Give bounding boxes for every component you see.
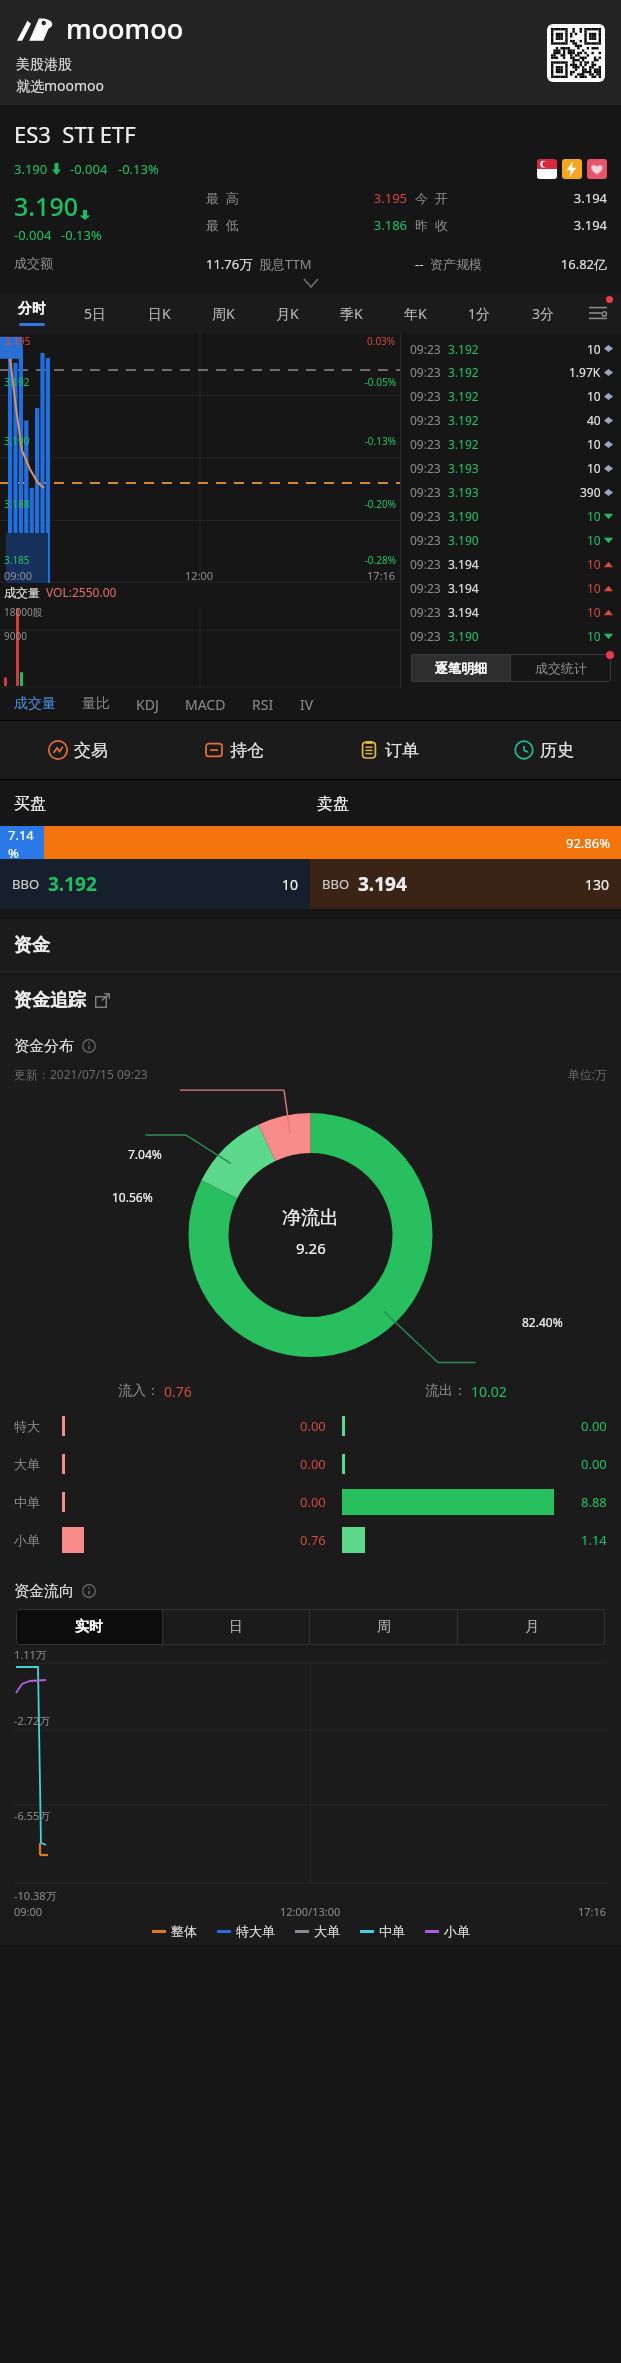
button[interactable]: 09:23 — [410, 432, 613, 456]
button[interactable]: 09:23 — [410, 384, 613, 408]
staticText: 资金 — [14, 934, 50, 957]
staticText: 大单 — [314, 1923, 340, 1939]
staticText: 09:23 — [410, 604, 441, 620]
staticText: 小单 — [444, 1923, 470, 1939]
button[interactable]: 年K — [383, 293, 447, 333]
staticText: 3.190 — [448, 532, 479, 548]
button[interactable]: KDJ — [136, 695, 185, 714]
button[interactable]: 日 — [163, 1609, 309, 1645]
staticText: 最 高 — [206, 189, 239, 207]
staticText: 3.194 — [448, 580, 479, 596]
button[interactable]: 09:23 — [410, 337, 613, 360]
button[interactable]: 月 — [458, 1609, 605, 1645]
staticText: 年K — [404, 304, 427, 323]
button[interactable]: 资金追踪 — [14, 972, 621, 1028]
button[interactable]: 成交量 — [14, 695, 82, 713]
button[interactable]: IV — [300, 695, 340, 714]
button[interactable]: 1分 — [447, 293, 511, 333]
button[interactable]: 09:23 — [410, 408, 613, 432]
staticText: 10 — [587, 532, 601, 548]
button[interactable]: 09:23 — [410, 360, 613, 384]
staticText: 分时 — [18, 300, 46, 318]
button[interactable]: 周K — [191, 293, 255, 333]
button[interactable]: BBO — [322, 859, 609, 909]
staticText: 股息TTM — [259, 255, 312, 273]
staticText: 成交额 — [14, 255, 53, 271]
button[interactable]: 成交统计 — [511, 654, 611, 682]
staticText: 1.14 — [581, 1531, 607, 1549]
button[interactable]: 量比 — [82, 695, 136, 713]
staticText: 7.14% — [8, 826, 44, 859]
staticText: 3.192 — [4, 375, 30, 389]
button[interactable]: 实时 — [16, 1609, 162, 1645]
button[interactable]: 逐笔明细 — [411, 654, 510, 682]
staticText: 3.193 — [448, 484, 479, 500]
staticText: 09:23 — [410, 532, 441, 548]
staticText: 季K — [340, 304, 363, 323]
staticText: 5日 — [84, 304, 107, 323]
button[interactable]: 09:23 — [410, 528, 613, 552]
staticText: 资金流向 — [14, 1582, 74, 1601]
staticText: 10.02 — [471, 1382, 507, 1401]
button[interactable]: 09:23 — [410, 504, 613, 528]
button[interactable]: 历史 — [466, 721, 621, 779]
staticText: 资金分布 — [14, 1037, 74, 1056]
staticText: 9.26 — [296, 1238, 326, 1258]
button[interactable]: 季K — [319, 293, 383, 333]
staticText: 10 — [587, 604, 601, 620]
button[interactable]: 09:23 — [410, 480, 613, 504]
button[interactable]: MACD — [185, 695, 252, 714]
button[interactable]: 09:23 — [410, 600, 613, 624]
staticText: 月 — [525, 1618, 539, 1636]
staticText: 特大单 — [236, 1923, 275, 1939]
staticText: 周 — [377, 1618, 391, 1636]
button[interactable]: 持仓 — [156, 721, 311, 779]
button[interactable]: RSI — [252, 695, 300, 714]
staticText: 09:00 — [4, 568, 33, 583]
staticText: 0.76 — [300, 1531, 326, 1549]
staticText: 1.97K — [569, 364, 601, 380]
staticText: 09:23 — [410, 484, 441, 500]
button[interactable]: 5日 — [63, 293, 127, 333]
button[interactable]: 09:23 — [410, 624, 613, 648]
staticText: IV — [300, 695, 314, 714]
staticText: 历史 — [540, 740, 574, 761]
button[interactable]: Singapore market — [537, 159, 557, 179]
button[interactable]: 日K — [127, 293, 191, 333]
staticText: MACD — [185, 695, 226, 714]
button[interactable]: BBO — [12, 859, 298, 909]
staticText: 日K — [148, 304, 171, 323]
button[interactable]: 09:23 — [410, 576, 613, 600]
staticText: 更新：2021/07/15 09:23 — [14, 1066, 148, 1082]
button[interactable]: 月K — [255, 293, 319, 333]
staticText: 成交量 — [4, 585, 40, 600]
staticText: 09:00 — [14, 1904, 43, 1919]
button[interactable]: 订单 — [311, 721, 466, 779]
staticText: 10 — [587, 460, 601, 476]
staticText: 3.192 — [448, 364, 479, 380]
staticText: 成交统计 — [535, 660, 587, 676]
staticText: 10 — [587, 388, 601, 404]
button[interactable]: Add to watchlist — [587, 159, 607, 179]
staticText: 3.192 — [448, 436, 479, 452]
button[interactable]: Chart settings — [575, 293, 621, 333]
staticText: 今 开 — [415, 189, 448, 207]
staticText: 卖盘 — [317, 794, 621, 814]
staticText: 大单 — [14, 1456, 52, 1472]
staticText: 净流出 — [282, 1206, 339, 1230]
staticText: 成交量 — [14, 695, 56, 713]
button[interactable]: 分时 — [0, 293, 63, 333]
button[interactable]: 09:23 — [410, 552, 613, 576]
button[interactable]: 3分 — [511, 293, 575, 333]
button[interactable]: 周 — [310, 1609, 457, 1645]
staticText: 日 — [229, 1618, 243, 1636]
button[interactable]: 交易 — [0, 721, 156, 779]
staticText: 3.190 — [448, 508, 479, 524]
staticText: 18000股 — [4, 605, 43, 619]
staticText: 3.192 — [448, 341, 479, 357]
button[interactable]: Level 1 quotes — [562, 159, 582, 179]
staticText: 0.00 — [300, 1417, 326, 1435]
button[interactable]: 09:23 — [410, 456, 613, 480]
staticText: 10 — [587, 341, 601, 357]
staticText: 92.86% — [566, 834, 611, 852]
